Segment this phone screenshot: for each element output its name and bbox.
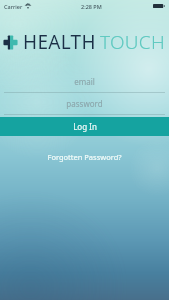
staticText: password [66, 98, 103, 109]
staticText: TOUCH [100, 29, 166, 55]
button[interactable]: Log In [0, 117, 169, 136]
staticText: Forgotten Password? [47, 152, 122, 162]
button[interactable]: password [0, 93, 169, 115]
staticText: Carrier [4, 3, 23, 10]
staticText: Log In [73, 121, 97, 132]
staticText: email [74, 76, 95, 87]
button[interactable]: email [0, 71, 169, 93]
staticText: 2:28 PM [81, 3, 102, 10]
staticText: HEALTH [23, 29, 96, 55]
button[interactable]: Forgotten Password? [41, 149, 128, 165]
